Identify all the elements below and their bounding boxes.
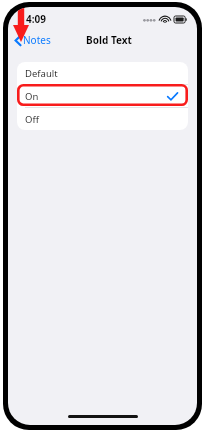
staticText: Off — [25, 113, 39, 126]
button[interactable]: On — [17, 85, 188, 107]
staticText: Notes — [23, 33, 51, 47]
staticText: On — [25, 90, 39, 103]
button[interactable]: Default — [17, 62, 188, 84]
button[interactable]: Off — [17, 108, 188, 130]
staticText: 4:09 — [26, 12, 46, 26]
other: Selected — [167, 92, 178, 101]
staticText: Bold Text — [86, 33, 132, 47]
staticText: Default — [25, 67, 58, 80]
button[interactable]: Notes — [13, 31, 53, 49]
